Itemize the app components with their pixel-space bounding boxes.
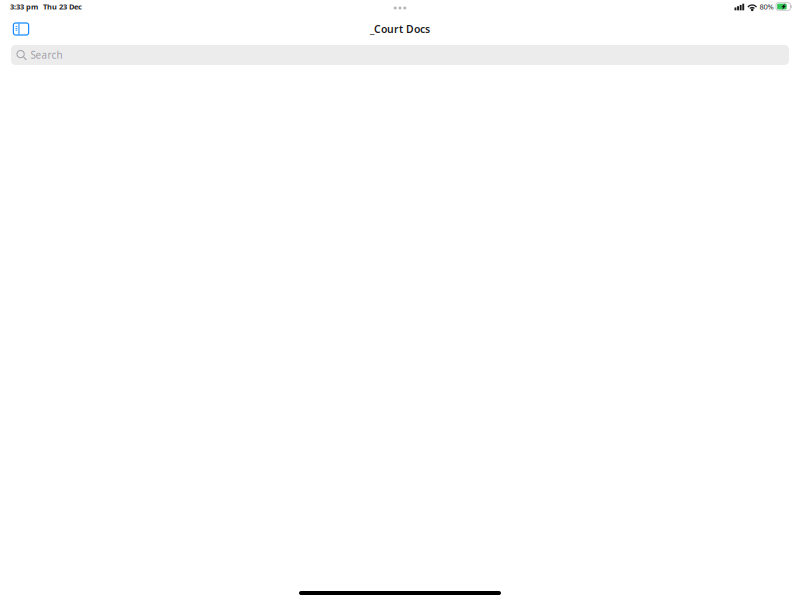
navigationBar: _Court Docs bbox=[0, 16, 800, 42]
button[interactable]: Search bbox=[11, 45, 789, 65]
button[interactable]: Show sidebar bbox=[6, 17, 36, 41]
staticText: 3:33 pm bbox=[10, 1, 38, 12]
staticText: Thu 23 Dec bbox=[43, 1, 82, 12]
staticText: 80% bbox=[760, 1, 774, 12]
staticText: _Court Docs bbox=[370, 22, 430, 36]
button[interactable]: Multitasking controls bbox=[382, 2, 418, 14]
staticText: Search bbox=[30, 48, 62, 62]
